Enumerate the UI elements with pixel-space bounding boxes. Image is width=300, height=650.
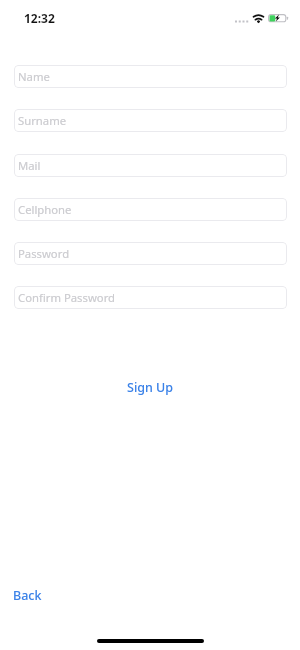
staticText: Confirm Password: [18, 290, 116, 305]
staticText: Surname: [18, 113, 67, 128]
other: Wi-Fi: [251, 13, 266, 25]
staticText: Sign Up: [127, 379, 174, 396]
staticText: Password: [18, 246, 70, 261]
staticText: 12:32: [24, 10, 55, 26]
button[interactable]: Name: [14, 65, 287, 88]
button[interactable]: Password: [14, 242, 287, 265]
staticText: Cellphone: [18, 202, 72, 217]
staticText: Name: [18, 69, 50, 84]
staticText: Mail: [18, 158, 41, 173]
button[interactable]: Back: [8, 585, 46, 605]
button[interactable]: Sign Up: [115, 375, 185, 399]
staticText: Back: [13, 587, 42, 604]
other: Battery charging: [268, 14, 289, 23]
button[interactable]: Surname: [14, 109, 287, 132]
button[interactable]: Confirm Password: [14, 286, 287, 309]
button[interactable]: Mail: [14, 154, 287, 177]
other: Cellular signal: [234, 19, 249, 25]
button[interactable]: Cellphone: [14, 198, 287, 221]
